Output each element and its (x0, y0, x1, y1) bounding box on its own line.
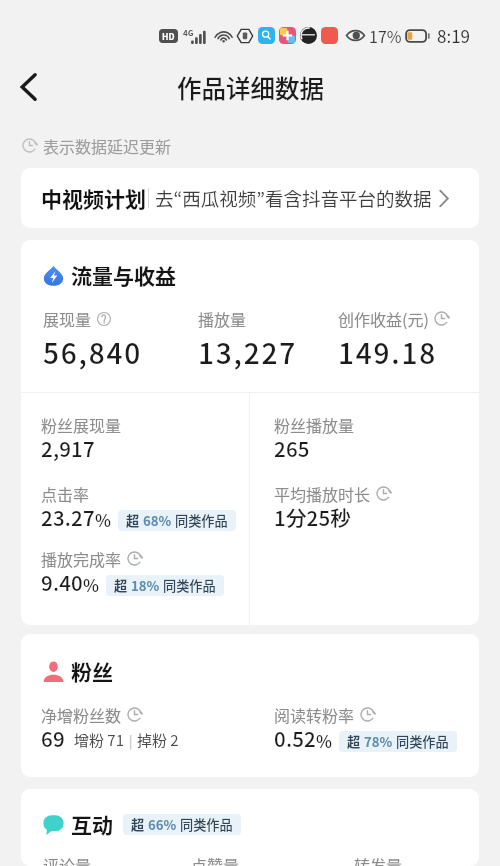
staticText: 粉丝 (71, 656, 113, 686)
staticText: 创作收益(元) (338, 307, 429, 330)
staticText: 56,840 (43, 332, 142, 373)
staticText: 表示数据延迟更新 (43, 134, 172, 157)
staticText: HD (162, 30, 175, 42)
staticText: 点赞量 (191, 853, 354, 866)
staticText: 78% (364, 732, 393, 751)
staticText: 8:19 (437, 23, 471, 48)
staticText: 作品详细数据 (177, 70, 324, 105)
staticText: 超 (131, 815, 145, 834)
staticText: 265 (274, 433, 310, 463)
staticText: 149.18 (338, 332, 437, 373)
staticText: % (316, 728, 332, 753)
staticText: 粉丝展现量 (41, 413, 122, 436)
staticText: 同类作品 (163, 576, 216, 595)
staticText: 流量与收益 (71, 260, 176, 290)
staticText: 掉粉 2 (137, 729, 179, 751)
staticText: 17% (369, 24, 402, 47)
button[interactable]: Back (0, 61, 56, 113)
staticText: 平均播放时长 (274, 482, 371, 505)
staticText: 净增粉丝数 (41, 703, 122, 726)
staticText: 点击率 (41, 482, 90, 505)
staticText: 4G (183, 27, 194, 39)
staticText: 66% (148, 815, 177, 834)
staticText: | (129, 731, 133, 750)
staticText: 去“西瓜视频”看含抖音平台的数据 (155, 185, 432, 212)
button[interactable]: 中视频计划 (21, 168, 479, 228)
staticText: 69 (41, 723, 65, 753)
staticText: 粉丝播放量 (274, 413, 355, 436)
staticText: 中视频计划 (41, 183, 146, 213)
staticText: 超 (126, 511, 140, 530)
staticText: % (95, 507, 111, 532)
staticText: 0.52 (274, 723, 316, 753)
staticText: 68% (143, 511, 172, 530)
staticText: 13,227 (198, 332, 297, 373)
staticText: 同类作品 (180, 815, 233, 834)
staticText: 2,917 (41, 433, 95, 463)
staticText: 播放量 (198, 307, 247, 330)
staticText: 1分25秒 (274, 502, 352, 532)
staticText: 互动 (71, 809, 113, 839)
staticText: 同类作品 (175, 511, 228, 530)
staticText: 超 (347, 732, 361, 751)
staticText: 展现量 (43, 307, 92, 330)
staticText: 增粉 71 (74, 729, 125, 751)
staticText: 转发量 (354, 853, 471, 866)
staticText: % (83, 572, 99, 597)
staticText: 播放完成率 (41, 547, 122, 570)
staticText: 23.27 (41, 502, 95, 532)
staticText: 9.40 (41, 567, 83, 597)
staticText: 评论量 (43, 853, 191, 866)
staticText: 阅读转粉率 (274, 703, 355, 726)
staticText: 超 (114, 576, 128, 595)
staticText: 同类作品 (396, 732, 449, 751)
staticText: 18% (131, 576, 160, 595)
